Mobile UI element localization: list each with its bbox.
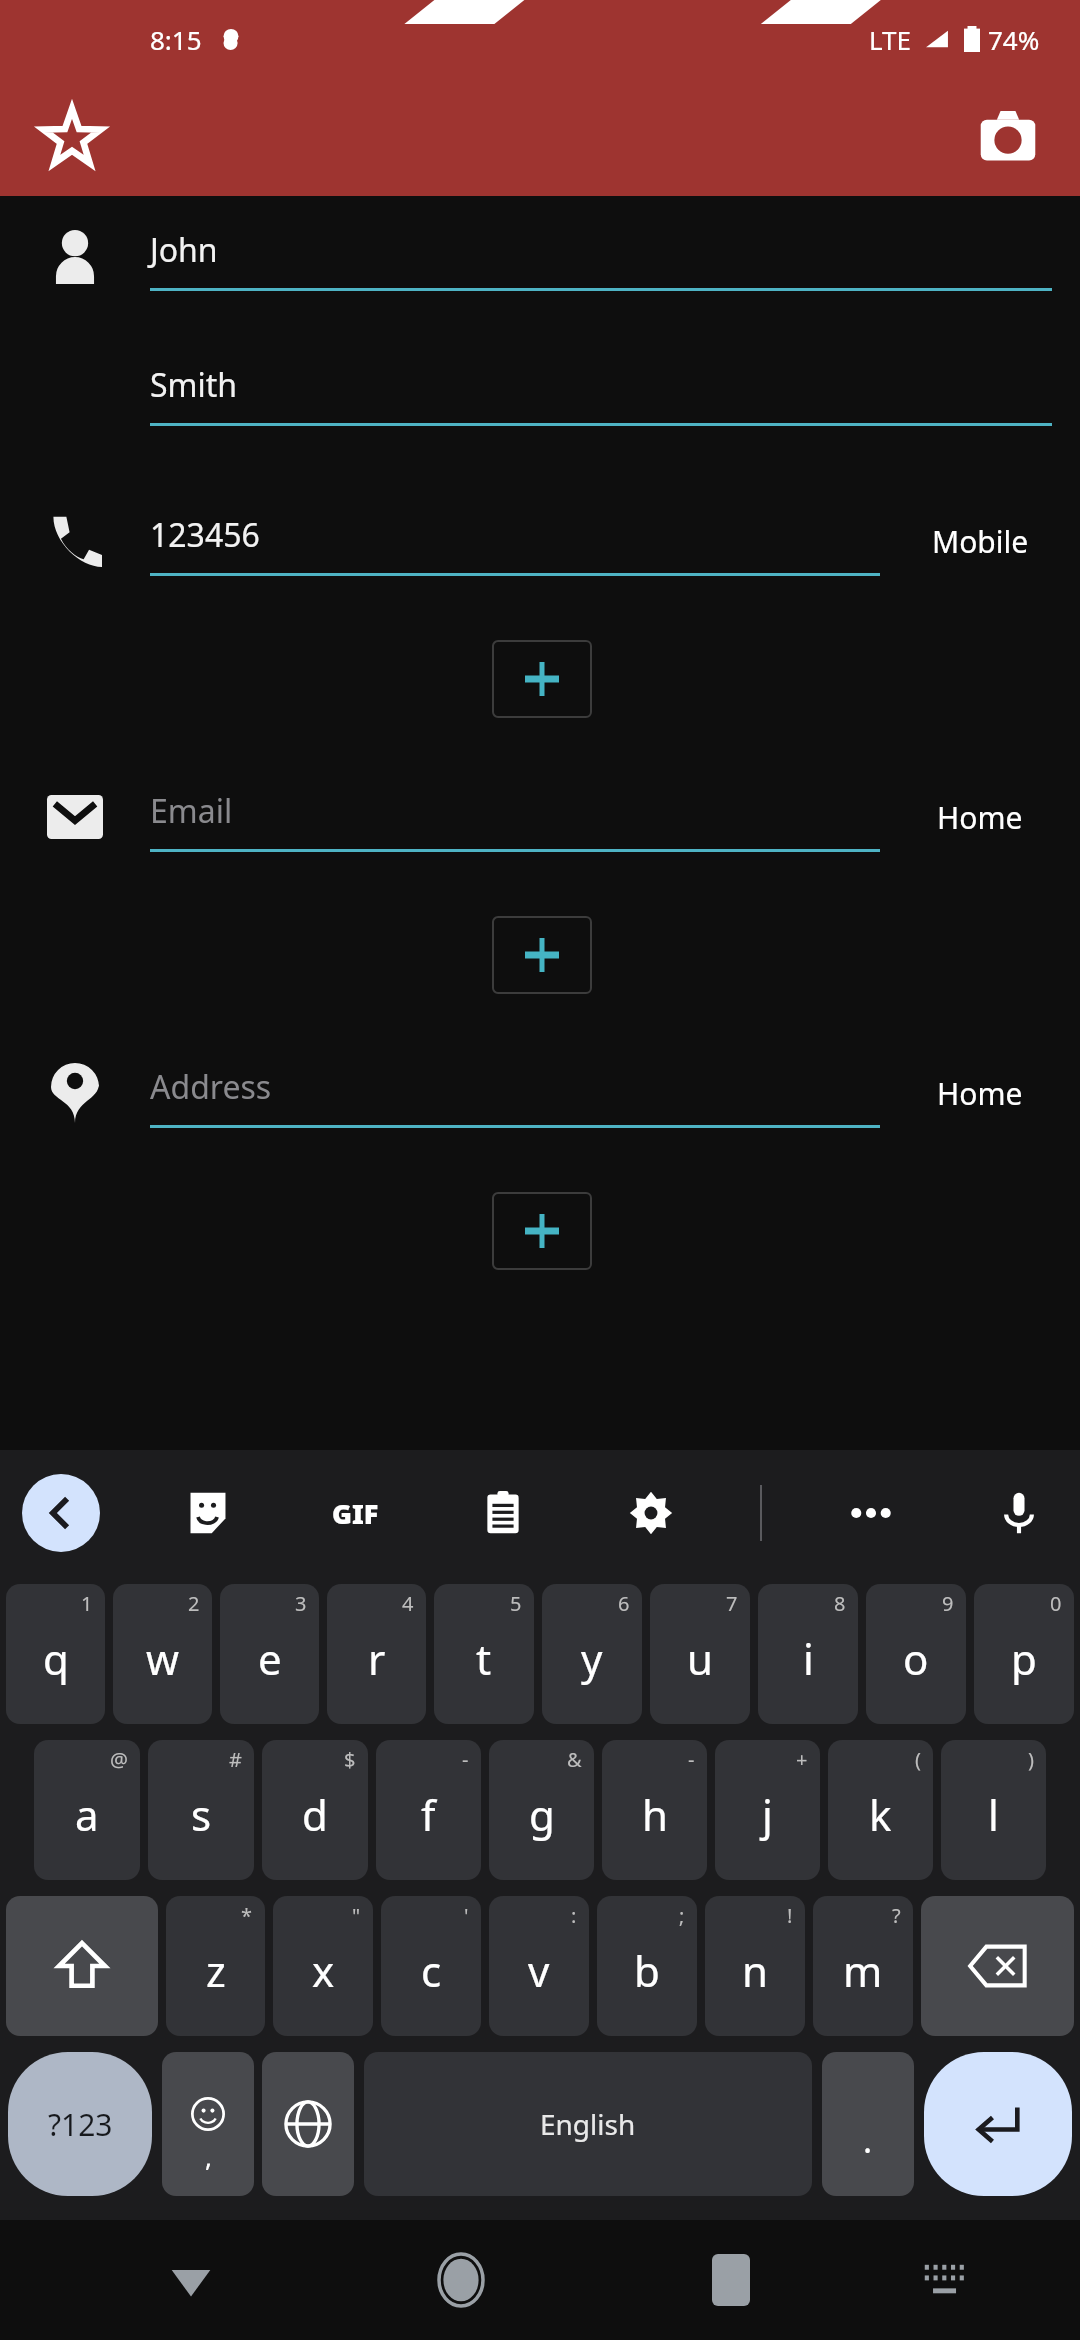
- button[interactable]: g: [489, 1740, 594, 1880]
- button[interactable]: Home: [880, 1038, 1080, 1148]
- button[interactable]: n: [705, 1896, 805, 2036]
- button[interactable]: Switch keyboard: [900, 2235, 990, 2325]
- staticText: ?: [892, 1902, 901, 1929]
- button[interactable]: Add: [492, 916, 592, 994]
- button[interactable]: f: [376, 1740, 481, 1880]
- button[interactable]: h: [602, 1740, 707, 1880]
- button[interactable]: b: [597, 1896, 697, 2036]
- staticText: b: [634, 1942, 660, 1999]
- button[interactable]: Recent apps: [686, 2235, 776, 2325]
- button[interactable]: l: [941, 1740, 1046, 1880]
- button[interactable]: t: [434, 1584, 534, 1724]
- staticText: 2: [188, 1590, 200, 1617]
- button[interactable]: q: [6, 1584, 105, 1724]
- button[interactable]: Change language: [262, 2052, 354, 2196]
- button[interactable]: Mobile: [880, 486, 1080, 596]
- button[interactable]: Favorite: [30, 95, 114, 179]
- staticText: #: [229, 1746, 242, 1773]
- button[interactable]: i: [758, 1584, 858, 1724]
- staticText: @: [110, 1746, 128, 1773]
- button[interactable]: Back: [146, 2235, 236, 2325]
- staticText: m: [843, 1942, 883, 1999]
- staticText: 4: [402, 1590, 414, 1617]
- button[interactable]: a: [34, 1740, 140, 1880]
- button[interactable]: Add: [492, 640, 592, 718]
- staticText: t: [476, 1630, 492, 1687]
- button[interactable]: d: [262, 1740, 368, 1880]
- button[interactable]: Address: [150, 1059, 880, 1128]
- button[interactable]: j: [715, 1740, 820, 1880]
- button[interactable]: c: [381, 1896, 481, 2036]
- staticText: z: [206, 1942, 226, 1999]
- staticText: -: [688, 1746, 695, 1773]
- button[interactable]: GIF: [316, 1474, 394, 1552]
- staticText: u: [687, 1630, 713, 1687]
- button[interactable]: y: [542, 1584, 642, 1724]
- staticText: e: [258, 1630, 282, 1687]
- staticText: v: [528, 1942, 550, 1999]
- button[interactable]: Home: [416, 2235, 506, 2325]
- staticText: j: [762, 1786, 773, 1843]
- button[interactable]: Backspace: [921, 1896, 1074, 2036]
- button[interactable]: Shift: [6, 1896, 158, 2036]
- staticText: Smith: [150, 363, 238, 407]
- button[interactable]: English: [364, 2052, 812, 2196]
- staticText: 9: [942, 1590, 954, 1617]
- button[interactable]: Clipboard: [464, 1474, 542, 1552]
- button[interactable]: Emoji: [162, 2052, 254, 2196]
- staticText: h: [642, 1786, 668, 1843]
- button[interactable]: v: [489, 1896, 589, 2036]
- staticText: ": [352, 1902, 361, 1929]
- staticText: 8: [834, 1590, 846, 1617]
- button[interactable]: Settings: [612, 1474, 690, 1552]
- button[interactable]: p: [974, 1584, 1074, 1724]
- staticText: GIF: [332, 1495, 379, 1532]
- button[interactable]: u: [650, 1584, 750, 1724]
- button[interactable]: 123456: [150, 507, 880, 576]
- staticText: *: [241, 1902, 253, 1929]
- button[interactable]: Take photo: [966, 95, 1050, 179]
- button[interactable]: ?123: [8, 2052, 152, 2196]
- button[interactable]: e: [220, 1584, 319, 1724]
- staticText: 3: [295, 1590, 307, 1617]
- button[interactable]: Voice input: [980, 1474, 1058, 1552]
- staticText: a: [75, 1786, 99, 1843]
- staticText: 6: [618, 1590, 630, 1617]
- staticText: Email: [150, 789, 233, 833]
- staticText: $: [344, 1746, 356, 1773]
- button[interactable]: Enter: [924, 2052, 1072, 2196]
- staticText: g: [529, 1786, 555, 1843]
- staticText: 74%: [988, 22, 1040, 57]
- staticText: +: [796, 1746, 808, 1773]
- button[interactable]: w: [113, 1584, 212, 1724]
- staticText: l: [988, 1786, 999, 1843]
- button[interactable]: More options: [832, 1474, 910, 1552]
- button[interactable]: x: [273, 1896, 373, 2036]
- button[interactable]: Smith: [150, 357, 1052, 426]
- button[interactable]: Add: [492, 1192, 592, 1270]
- staticText: LTE: [869, 22, 912, 57]
- staticText: !: [787, 1902, 793, 1929]
- staticText: o: [903, 1630, 929, 1687]
- button[interactable]: Home: [880, 762, 1080, 872]
- button[interactable]: Stickers: [169, 1474, 247, 1552]
- button[interactable]: k: [828, 1740, 933, 1880]
- button[interactable]: John: [150, 222, 1052, 291]
- staticText: 7: [726, 1590, 738, 1617]
- button[interactable]: m: [813, 1896, 913, 2036]
- staticText: y: [581, 1630, 603, 1687]
- button[interactable]: .: [822, 2052, 914, 2196]
- staticText: Address: [150, 1065, 272, 1109]
- button[interactable]: o: [866, 1584, 966, 1724]
- button[interactable]: s: [148, 1740, 254, 1880]
- staticText: s: [191, 1786, 212, 1843]
- button[interactable]: Back: [22, 1474, 100, 1552]
- staticText: r: [368, 1630, 386, 1687]
- button[interactable]: Email: [150, 783, 880, 852]
- button[interactable]: r: [327, 1584, 426, 1724]
- staticText: p: [1011, 1630, 1037, 1687]
- button[interactable]: z: [166, 1896, 265, 2036]
- staticText: 1: [81, 1590, 93, 1617]
- staticText: English: [540, 2105, 636, 2143]
- staticText: ): [1028, 1746, 1034, 1773]
